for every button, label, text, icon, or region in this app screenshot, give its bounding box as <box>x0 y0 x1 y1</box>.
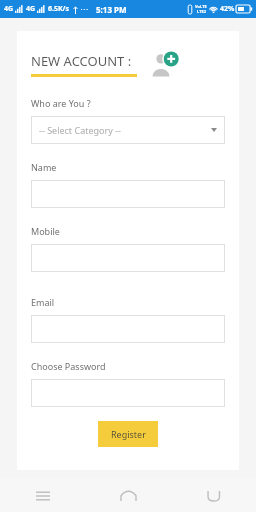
staticText: 6.5K/s <box>48 4 70 14</box>
button[interactable]: Add profile photo <box>147 47 181 81</box>
staticText: Choose Password <box>31 360 106 372</box>
button[interactable] <box>31 379 225 407</box>
button[interactable]: Recent apps <box>0 479 86 512</box>
staticText: 5:13 PM <box>96 4 127 15</box>
button[interactable] <box>31 315 225 343</box>
staticText: Mobile <box>31 225 60 237</box>
staticText: Email <box>31 296 55 308</box>
button[interactable] <box>31 180 225 208</box>
staticText: Register <box>111 428 146 440</box>
staticText: VoLTE <box>195 4 207 9</box>
button[interactable]: Back <box>171 479 256 512</box>
staticText: -- Select Category -- <box>39 124 121 136</box>
staticText: LTE2 <box>197 9 206 14</box>
button[interactable]: Home <box>86 479 171 512</box>
staticText: Who are You ? <box>31 97 91 109</box>
staticText: Name <box>31 161 57 173</box>
staticText: 42% <box>220 4 235 14</box>
staticText: 4G <box>4 4 14 14</box>
button[interactable]: Register <box>98 421 158 447</box>
staticText: ⋯ <box>80 5 88 14</box>
button[interactable] <box>31 244 225 272</box>
staticText: NEW ACCOUNT : <box>31 52 132 70</box>
button[interactable]: -- Select Category -- <box>31 116 225 144</box>
staticText: 4G <box>26 4 36 14</box>
